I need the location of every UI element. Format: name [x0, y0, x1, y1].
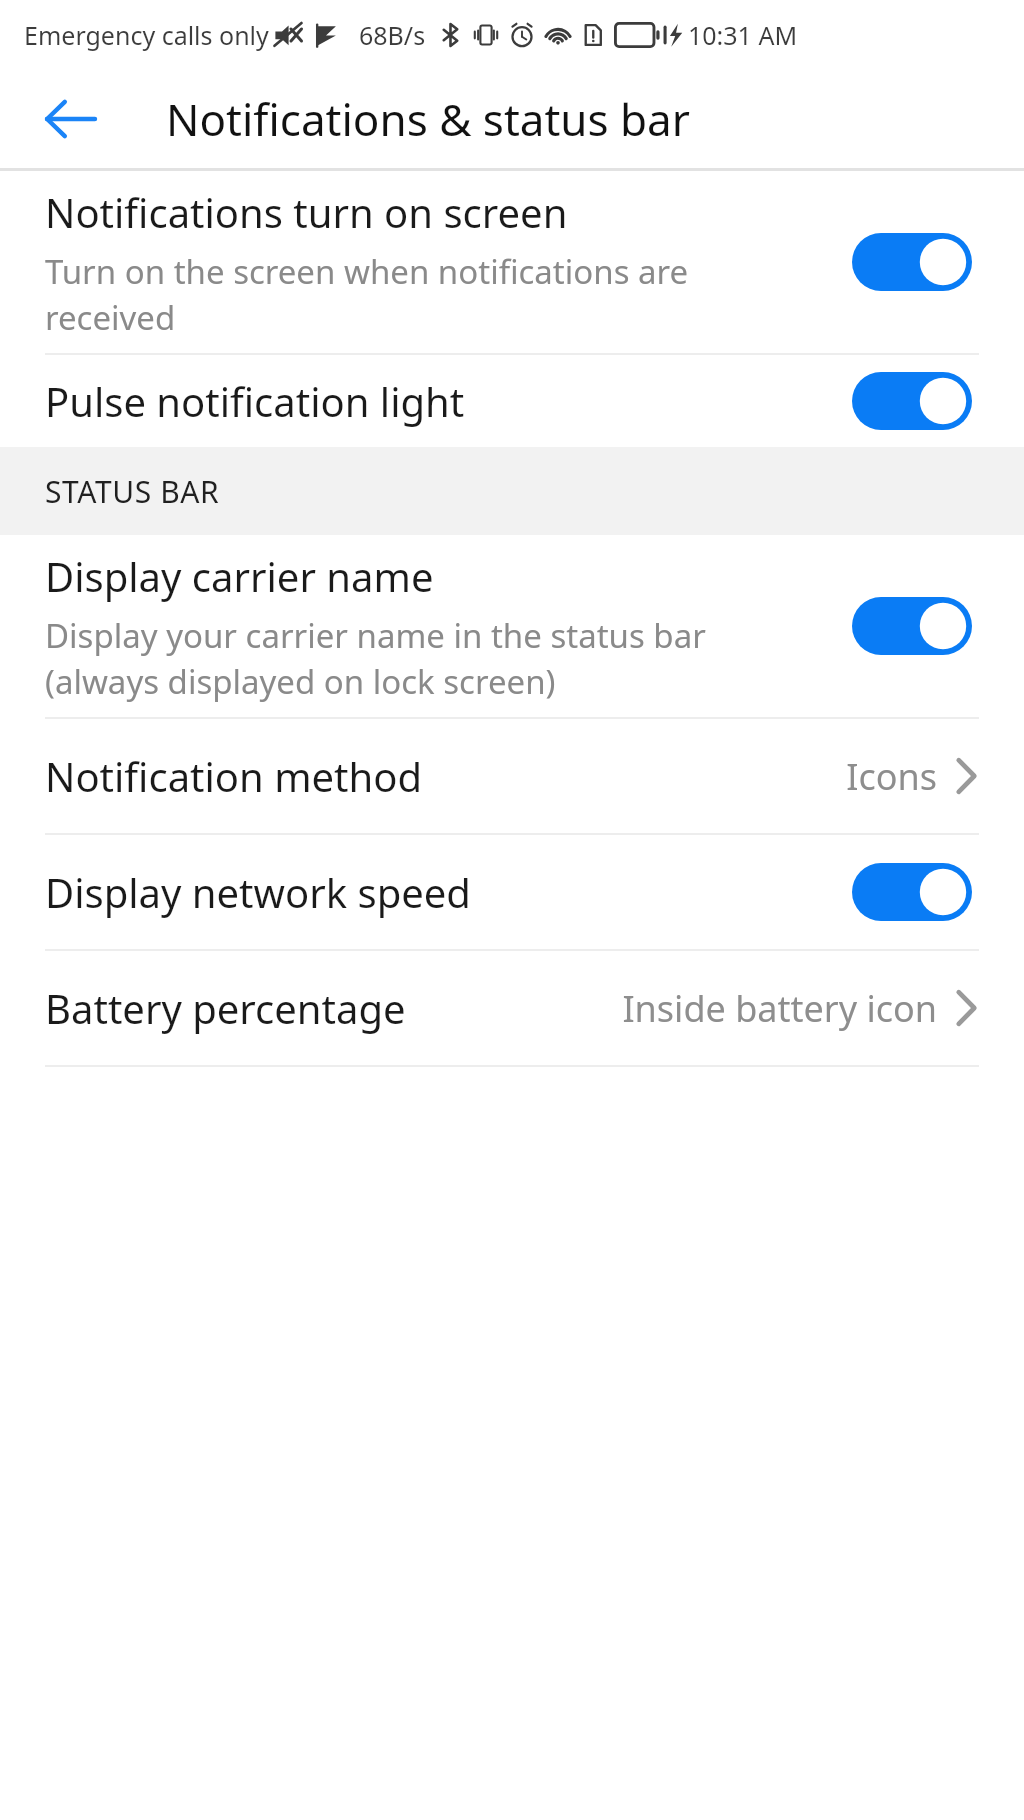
button[interactable]: Pulse notification light — [0, 355, 1024, 447]
button[interactable]: Battery percentage — [0, 951, 1024, 1065]
button[interactable]: Display carrier name — [0, 535, 1024, 717]
button[interactable]: Notifications turn on screen — [0, 171, 1024, 353]
button[interactable]: Notification method — [0, 719, 1024, 833]
staticText: Display carrier name — [45, 549, 434, 603]
staticText: 10:31 AM — [688, 18, 798, 52]
staticText: Notifications turn on screen — [45, 185, 568, 239]
button[interactable]: Back — [26, 75, 114, 163]
staticText: Inside battery icon — [622, 984, 937, 1033]
button[interactable]: Display network speed — [0, 835, 1024, 949]
staticText: Turn on the screen when notifications ar… — [45, 249, 689, 340]
staticText: Emergency calls only — [24, 18, 269, 52]
staticText: Notifications & status bar — [166, 89, 690, 149]
staticText: Battery percentage — [45, 981, 622, 1035]
staticText: 68B/s — [359, 18, 426, 52]
staticText: Pulse notification light — [45, 374, 836, 428]
staticText: Display network speed — [45, 865, 836, 919]
staticText: Icons — [846, 752, 937, 801]
staticText: Notification method — [45, 749, 846, 803]
staticText: STATUS BAR — [45, 471, 220, 512]
staticText: Display your carrier name in the status … — [45, 613, 706, 704]
